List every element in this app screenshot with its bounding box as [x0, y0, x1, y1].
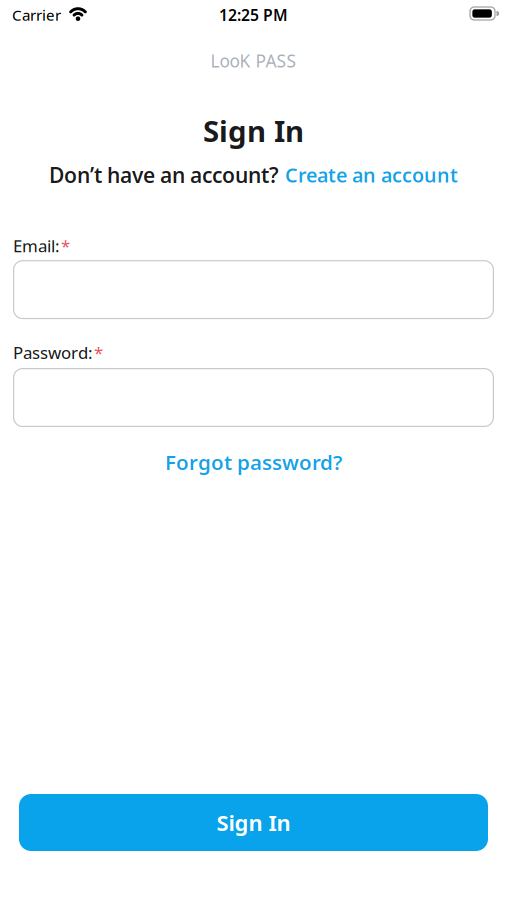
- staticText: Sign In: [216, 807, 290, 837]
- staticText: Password:: [13, 341, 93, 364]
- staticText: Email:: [13, 234, 60, 257]
- staticText: LooK PASS: [210, 49, 296, 73]
- staticText: 12:25 PM: [219, 4, 288, 26]
- staticText: *: [94, 341, 103, 364]
- staticText: Create an account: [285, 161, 458, 188]
- staticText: Sign In: [203, 111, 304, 151]
- button[interactable]: Sign In: [0, 794, 507, 851]
- button[interactable]: Email: [0, 260, 507, 319]
- staticText: Carrier: [12, 5, 61, 25]
- staticText: *: [61, 234, 70, 257]
- button[interactable]: Forgot password?: [165, 442, 342, 482]
- staticText: Don’t have an account?: [49, 161, 279, 189]
- button[interactable]: Create an account: [285, 161, 458, 188]
- staticText: Forgot password?: [165, 448, 342, 476]
- button[interactable]: Password: [0, 368, 507, 427]
